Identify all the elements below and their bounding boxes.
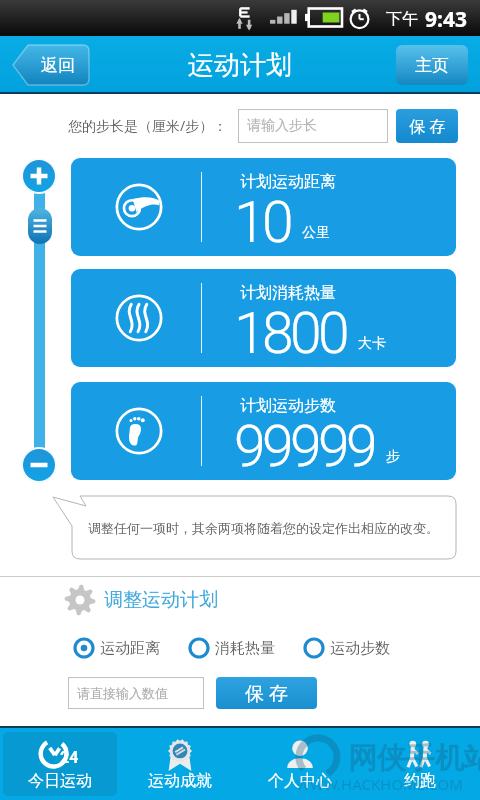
staticText: 公里 — [302, 224, 330, 242]
button[interactable]: 24 — [3, 732, 117, 796]
staticText: 个人中心 — [268, 771, 332, 791]
staticText: 今日运动 — [28, 771, 92, 791]
button[interactable]: 返回 — [13, 45, 89, 85]
button[interactable]: 约跑 — [363, 732, 477, 796]
staticText: 步 — [386, 448, 400, 466]
button[interactable]: 运动距离 — [73, 637, 160, 659]
staticText: 下午 — [386, 9, 418, 29]
staticText: 消耗热量 — [215, 639, 275, 658]
button[interactable]: 计划消耗热量 — [71, 269, 456, 367]
staticText: 保 存 — [409, 115, 446, 137]
staticText: 运动计划 — [188, 49, 292, 82]
staticText: 10 — [234, 189, 291, 256]
staticText: 运动成就 — [148, 771, 212, 791]
staticText: 调整运动计划 — [104, 588, 218, 612]
staticText: WWW.HACKHOME.COM — [296, 774, 463, 794]
button[interactable]: Increase — [23, 160, 55, 192]
button[interactable]: 消耗热量 — [188, 637, 275, 659]
staticText: 约跑 — [404, 771, 436, 791]
staticText: 请直接输入数值 — [77, 685, 168, 701]
staticText: 9:43 — [425, 5, 467, 34]
button[interactable]: 保 存 — [396, 109, 458, 143]
staticText: 网侠手机站 — [348, 740, 480, 777]
staticText: 主页 — [415, 55, 449, 76]
staticText: 请输入步长 — [247, 117, 317, 135]
staticText: 运动步数 — [330, 639, 390, 658]
staticText: 99999 — [234, 413, 375, 480]
button[interactable]: Decrease — [23, 449, 55, 481]
staticText: 计划运动步数 — [240, 396, 336, 416]
staticText: 运动距离 — [100, 639, 160, 658]
button[interactable]: 计划运动步数 — [71, 382, 456, 480]
button[interactable]: 主页 — [396, 45, 468, 85]
staticText: 计划消耗热量 — [240, 283, 336, 303]
button[interactable]: Slider handle — [28, 208, 52, 244]
staticText: 返回 — [41, 55, 75, 76]
staticText: 保 存 — [245, 680, 288, 706]
staticText: 1800 — [234, 300, 347, 367]
staticText: 您的步长是（厘米/步）： — [68, 116, 228, 135]
staticText: 大卡 — [358, 335, 386, 353]
button[interactable]: 运动步数 — [303, 637, 390, 659]
staticText: 24 — [60, 748, 79, 767]
button[interactable]: 运动成就 — [123, 732, 237, 796]
staticText: 计划运动距离 — [240, 172, 336, 192]
button[interactable]: 调整运动计划 — [64, 584, 218, 616]
button[interactable]: 计划运动距离 — [71, 158, 456, 256]
button[interactable]: 保 存 — [216, 677, 317, 709]
button[interactable]: 个人中心 — [243, 732, 357, 796]
staticText: 调整任何一项时，其余两项将随着您的设定作出相应的改变。 — [88, 520, 439, 536]
